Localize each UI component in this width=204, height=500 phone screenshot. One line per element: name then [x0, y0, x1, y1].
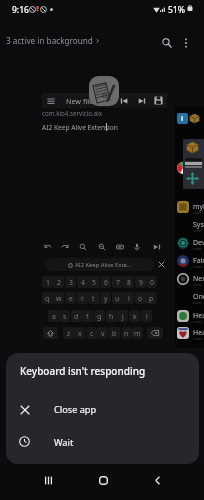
button[interactable] — [43, 327, 58, 339]
button[interactable]: p — [146, 292, 157, 304]
button[interactable]: Wait — [6, 424, 199, 456]
staticText: s — [63, 312, 67, 321]
button[interactable]: Text editor — [89, 76, 119, 106]
staticText: com.kio4.servicio.aix — [42, 109, 103, 117]
button[interactable]: 8 — [123, 276, 134, 288]
button[interactable]: AI2 Keep Alive Exte... — [46, 258, 154, 271]
staticText: AI2 Keep Alive Exte... — [75, 261, 132, 269]
staticText: com. — [193, 300, 203, 306]
button[interactable]: 1 — [42, 276, 53, 288]
staticText: i — [181, 114, 184, 124]
button[interactable]: More — [151, 241, 163, 253]
button[interactable]: f — [82, 310, 93, 322]
button[interactable]: Search — [155, 31, 179, 55]
staticText: z — [67, 329, 71, 338]
staticText: x — [78, 329, 82, 338]
button[interactable]: t — [88, 292, 99, 304]
button[interactable] — [176, 270, 204, 288]
staticText: com. — [193, 336, 203, 342]
staticText: q — [45, 294, 50, 303]
button[interactable] — [176, 288, 204, 306]
staticText: e — [69, 294, 73, 303]
staticText: i — [128, 294, 130, 303]
button[interactable]: Redo — [59, 241, 71, 253]
button[interactable] — [176, 252, 204, 270]
button[interactable] — [176, 198, 204, 216]
button[interactable] — [147, 327, 163, 339]
button[interactable]: Voice input — [131, 241, 143, 253]
staticText: com. — [193, 246, 203, 252]
button[interactable]: Clipboard — [114, 241, 126, 253]
button[interactable]: More options — [174, 31, 198, 55]
staticText: 2 — [57, 278, 61, 287]
button[interactable] — [176, 307, 204, 325]
button[interactable]: g — [94, 310, 105, 322]
button[interactable]: Home — [86, 463, 120, 497]
button[interactable]: a — [48, 310, 59, 322]
staticText: 6 — [104, 278, 108, 287]
button[interactable]: Dismiss suggestion — [155, 258, 167, 270]
button[interactable]: Search — [77, 241, 89, 253]
staticText: com. — [193, 228, 203, 234]
button[interactable]: z — [63, 327, 74, 339]
button[interactable]: 4 — [77, 276, 88, 288]
button[interactable]: k — [129, 310, 140, 322]
button[interactable]: o — [135, 292, 146, 304]
button[interactable]: x — [74, 327, 85, 339]
button[interactable]: q — [42, 292, 53, 304]
button[interactable]: i — [123, 292, 134, 304]
staticText: Hea — [193, 311, 204, 321]
staticText: a — [52, 312, 56, 321]
staticText: k — [133, 312, 137, 321]
button[interactable]: m — [132, 327, 143, 339]
button[interactable]: 0 — [146, 276, 157, 288]
button[interactable]: 5 — [88, 276, 99, 288]
button[interactable]: n — [121, 327, 132, 339]
staticText: n — [124, 329, 129, 338]
button[interactable]: w — [53, 292, 64, 304]
button[interactable]: j — [117, 310, 128, 322]
staticText: 9 — [139, 278, 143, 287]
button[interactable]: u — [112, 292, 123, 304]
staticText: y — [104, 294, 108, 303]
button[interactable]: Close app — [6, 392, 199, 424]
button[interactable]: c — [86, 327, 97, 339]
staticText: 51% — [168, 4, 185, 16]
staticText: d — [74, 312, 79, 321]
button[interactable]: v — [97, 327, 108, 339]
button[interactable]: r — [77, 292, 88, 304]
staticText: 1 — [46, 278, 50, 287]
staticText: 0 — [150, 278, 154, 287]
button[interactable]: 7 — [112, 276, 123, 288]
staticText: One — [193, 292, 204, 302]
button[interactable]: 2 — [53, 276, 64, 288]
button[interactable] — [176, 324, 204, 342]
button[interactable]: Translate — [96, 241, 108, 253]
staticText: p — [149, 294, 154, 303]
button[interactable]: h — [106, 310, 117, 322]
staticText: 9:16 — [12, 4, 29, 16]
staticText: Nex — [193, 274, 204, 284]
button[interactable]: 6 — [100, 276, 111, 288]
staticText: Dev — [193, 238, 204, 248]
button[interactable]: 9 — [135, 276, 146, 288]
button[interactable]: y — [100, 292, 111, 304]
button[interactable]: Undo — [42, 241, 54, 253]
button[interactable]: s — [59, 310, 70, 322]
staticText: m — [134, 329, 141, 338]
button[interactable] — [176, 234, 204, 252]
staticText: w — [56, 294, 62, 303]
button[interactable]: l — [141, 310, 152, 322]
button[interactable]: b — [109, 327, 120, 339]
button[interactable]: d — [71, 310, 82, 322]
staticText: Hea — [193, 328, 204, 338]
button[interactable]: 3 — [65, 276, 76, 288]
button[interactable] — [176, 216, 204, 234]
staticText: 3 active in background — [6, 35, 93, 46]
staticText: 5 — [92, 278, 96, 287]
button[interactable]: e — [65, 292, 76, 304]
button[interactable]: 3 active in background — [4, 34, 103, 47]
staticText: l — [146, 312, 148, 321]
button[interactable]: Recent apps — [31, 463, 65, 497]
button[interactable]: Back — [140, 463, 174, 497]
